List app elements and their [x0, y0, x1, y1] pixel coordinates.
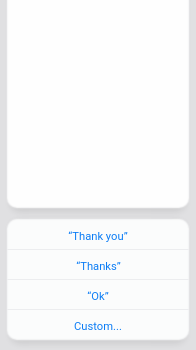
button[interactable]: “Thank you”	[7, 219, 189, 249]
button[interactable]: Custom...	[7, 309, 189, 339]
staticText: “Thanks”	[76, 260, 121, 273]
button[interactable]: “Ok”	[7, 279, 189, 309]
staticText: Custom...	[74, 320, 122, 333]
button[interactable]: “Thanks”	[7, 249, 189, 279]
staticText: “Ok”	[87, 290, 109, 303]
staticText: “Thank you”	[68, 230, 128, 243]
